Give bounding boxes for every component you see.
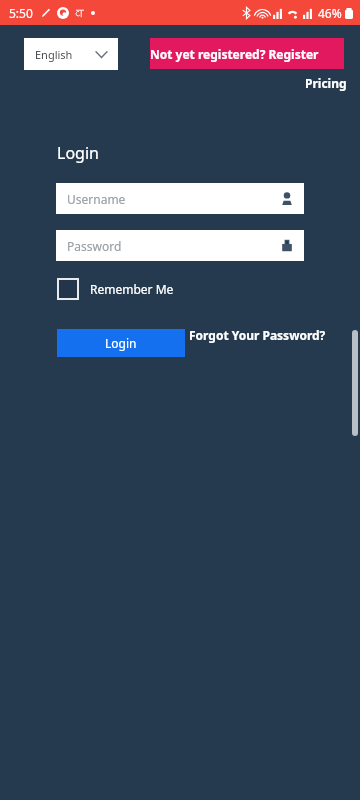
other: Username	[281, 192, 293, 205]
button[interactable]: Forgot Your Password?	[189, 327, 326, 343]
staticText: Not yet registered? Register Now	[150, 46, 344, 62]
button[interactable]: Not yet registered? Register Now	[150, 38, 344, 69]
button[interactable]: Username	[56, 183, 304, 214]
staticText: Username	[67, 191, 126, 207]
staticText: Remember Me	[90, 281, 174, 297]
staticText: Login	[105, 335, 137, 351]
button[interactable]: Pricing	[305, 75, 347, 91]
staticText: English	[35, 47, 73, 62]
staticText: Login	[57, 142, 99, 164]
staticText: Password	[67, 238, 122, 254]
button[interactable]: Login	[57, 329, 185, 357]
button[interactable]: Password	[56, 230, 304, 261]
button[interactable]: Remember Me	[57, 277, 174, 301]
staticText: 46%	[318, 5, 342, 21]
button[interactable]: English	[24, 38, 118, 70]
staticText: 5:50	[9, 5, 33, 21]
other: Password	[281, 239, 293, 252]
